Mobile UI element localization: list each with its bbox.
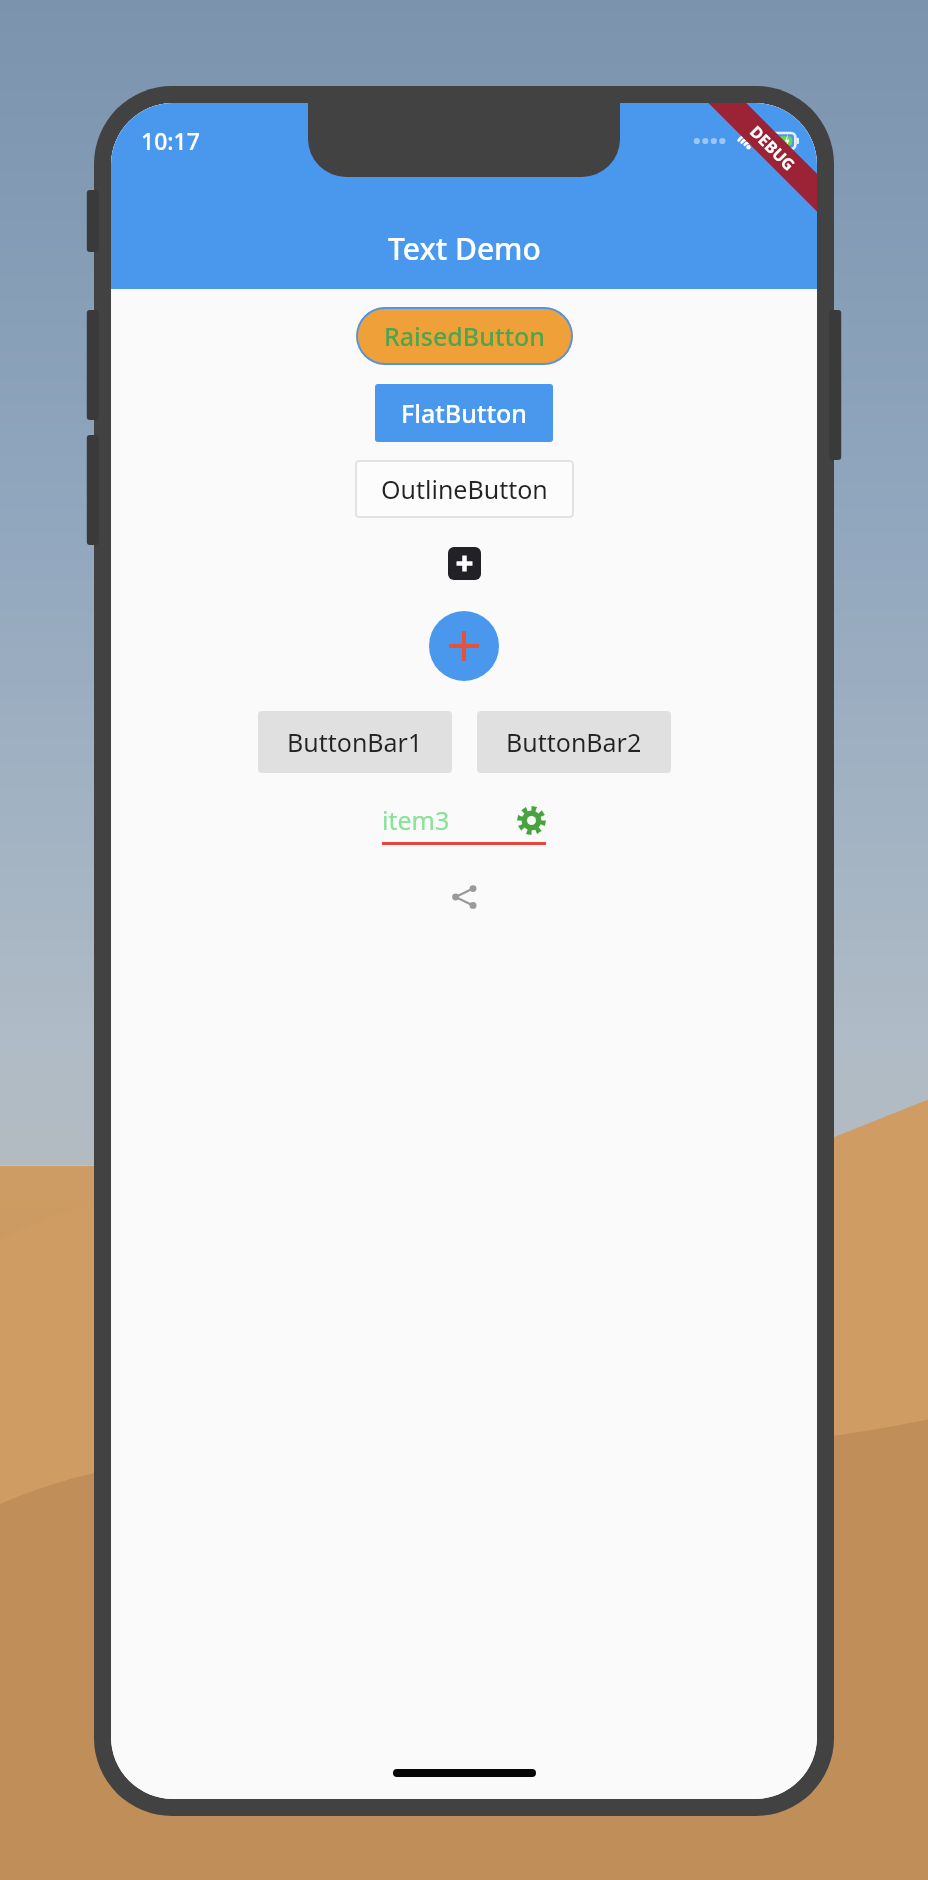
staticText: 10:17 bbox=[141, 125, 200, 156]
staticText: OutlineButton bbox=[381, 472, 548, 506]
button[interactable]: FlatButton bbox=[375, 384, 553, 442]
button[interactable]: ButtonBar1 bbox=[258, 711, 452, 773]
staticText: RaisedButton bbox=[384, 319, 545, 353]
staticText: ButtonBar1 bbox=[287, 725, 423, 759]
button[interactable]: Share bbox=[442, 875, 486, 919]
button[interactable]: ButtonBar2 bbox=[477, 711, 671, 773]
staticText: FlatButton bbox=[401, 396, 527, 430]
staticText: ButtonBar2 bbox=[506, 725, 642, 759]
staticText: Text Demo bbox=[388, 228, 541, 269]
staticText: DEBUG bbox=[745, 121, 800, 175]
button[interactable]: Add bbox=[429, 611, 499, 681]
staticText: item3 bbox=[382, 803, 450, 837]
button[interactable]: Add bbox=[448, 547, 481, 580]
button[interactable]: RaisedButton bbox=[356, 307, 573, 365]
button[interactable]: item3 bbox=[382, 803, 546, 837]
button[interactable]: OutlineButton bbox=[355, 460, 574, 518]
